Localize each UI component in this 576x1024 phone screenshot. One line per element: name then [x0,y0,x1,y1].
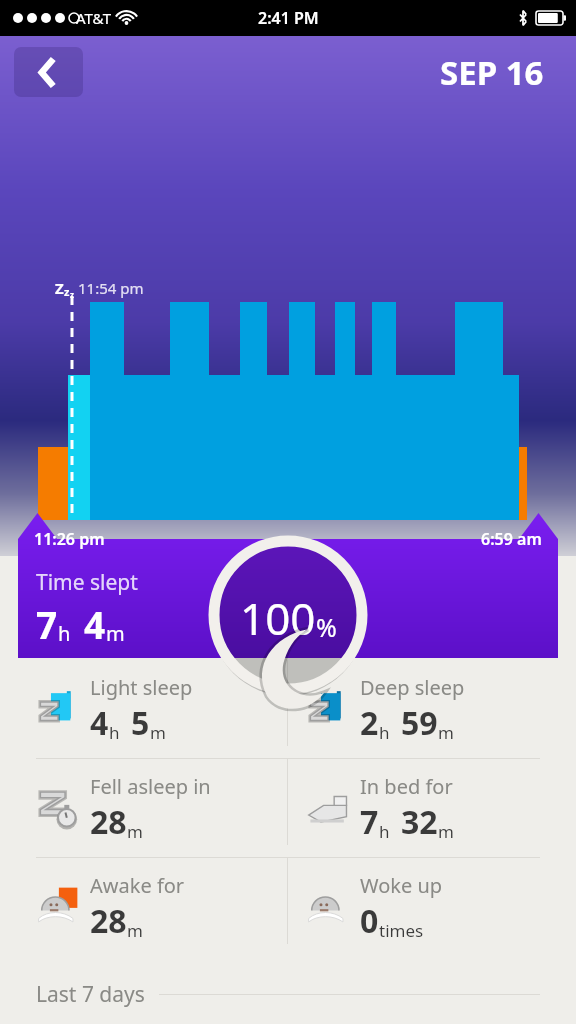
button[interactable] [18,513,558,658]
staticText: 28 [90,899,127,943]
staticText: Fell asleep in [90,773,211,800]
staticText: 59 [401,701,438,745]
staticText: 2:41 PM [258,7,319,29]
staticText: z [70,289,74,300]
button[interactable]: Deep sleep [306,660,558,758]
staticText: h [109,721,120,744]
staticText: 6:59 am [481,528,542,550]
staticText: h [379,820,390,843]
staticText: Awake for [90,872,185,899]
staticText: Time slept [36,568,138,597]
staticText: 0 [360,899,379,943]
staticText: In bed for [360,773,453,800]
staticText: Deep sleep [360,674,465,701]
staticText: Woke up [360,872,443,899]
staticText: h [379,721,390,744]
staticText: 4 [84,599,106,649]
staticText: SEP 16 [440,50,544,95]
button[interactable]: Back [14,47,83,97]
staticText: m [438,721,454,744]
button[interactable]: Last 7 days [36,980,540,1009]
staticText: 11:54 pm [78,278,144,298]
staticText: m [106,620,125,647]
staticText: z [64,284,70,299]
button[interactable]: Woke up [306,858,558,956]
staticText: Z [55,278,64,298]
staticText: 32 [401,800,438,844]
staticText: 7 [36,599,58,649]
staticText: m [127,919,143,942]
staticText: AT&T [76,8,111,28]
button[interactable]: In bed for [306,759,558,857]
button[interactable]: Fell asleep in [36,759,287,857]
staticText: 100 [240,588,316,648]
staticText: times [379,919,424,942]
staticText: 28 [90,800,127,844]
staticText: 7 [360,800,379,844]
staticText: 4 [90,701,109,745]
staticText: m [127,820,143,843]
staticText: m [438,820,454,843]
staticText: Light sleep [90,674,193,701]
staticText: 11:26 pm [34,528,105,550]
button[interactable]: Light sleep [36,660,287,758]
staticText: 2 [360,701,379,745]
staticText: m [150,721,166,744]
staticText: Last 7 days [36,980,145,1009]
button[interactable]: Awake for [36,858,287,956]
staticText: h [58,620,71,647]
staticText: 5 [131,701,150,745]
staticText: % [316,610,337,644]
